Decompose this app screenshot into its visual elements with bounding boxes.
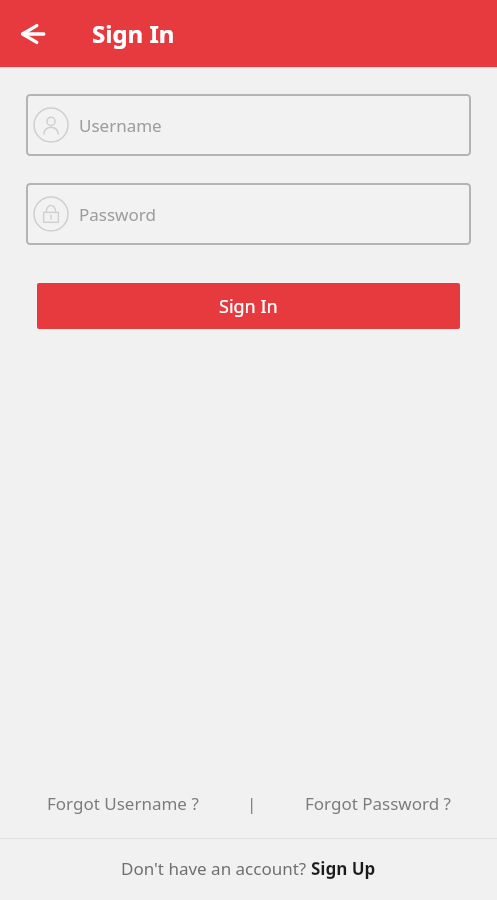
staticText: Sign Up: [311, 857, 376, 880]
button[interactable]: Forgot Username ?: [37, 782, 209, 825]
staticText: Forgot Password ?: [305, 792, 451, 815]
staticText: Sign In: [219, 294, 278, 319]
staticText: Username: [79, 114, 162, 137]
staticText: Don't have an account?: [121, 857, 311, 880]
staticText: Password: [79, 203, 156, 226]
button[interactable]: Forgot Password ?: [295, 782, 461, 825]
staticText: Sign In: [92, 17, 175, 50]
button[interactable]: Don't have an account?: [0, 839, 497, 897]
button[interactable]: Password: [26, 183, 471, 245]
button[interactable]: Back: [9, 10, 57, 58]
button[interactable]: Username: [26, 94, 471, 156]
staticText: Forgot Username ?: [47, 792, 199, 815]
staticText: |: [247, 792, 257, 815]
button[interactable]: Sign In: [37, 283, 460, 329]
